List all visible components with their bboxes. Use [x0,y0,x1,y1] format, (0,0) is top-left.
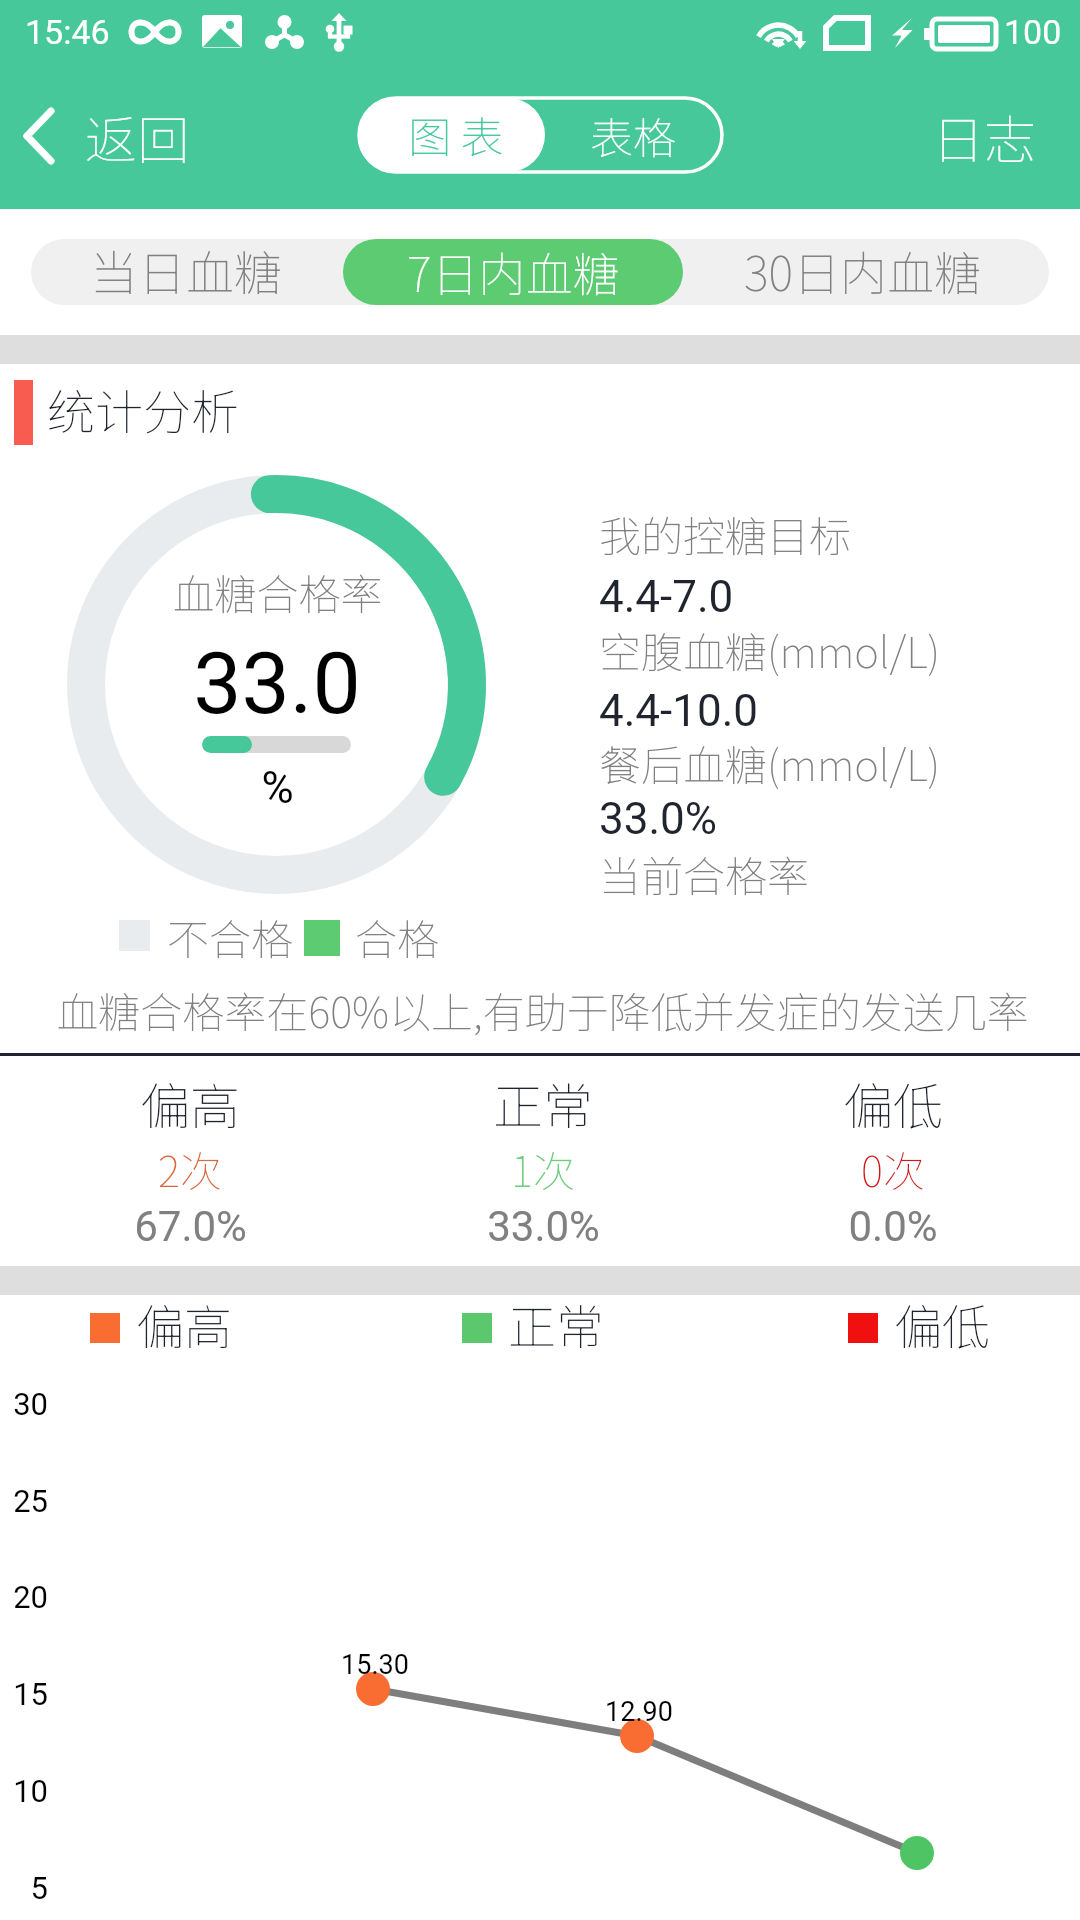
button[interactable] [720,1056,1060,1256]
staticText: 偏高 [140,1067,240,1139]
staticText: 0次 [861,1138,925,1199]
staticText: 4.4-7.0 [599,571,734,623]
staticText: 15 [0,1676,48,1712]
button[interactable]: 返回 [12,100,212,195]
button[interactable] [31,239,343,305]
button[interactable] [359,98,545,172]
button[interactable] [545,98,722,172]
staticText: 15:46 [25,12,110,52]
staticText: 当日血糖 [90,235,283,305]
staticText: 偏低 [843,1067,943,1139]
staticText: 67.0% [134,1202,247,1251]
staticText: 4.4-10.0 [599,685,759,737]
button[interactable] [10,1056,350,1256]
staticText: 当前合格率 [599,843,810,904]
staticText: % [261,762,294,814]
staticText: 统计分析 [47,374,240,444]
staticText: 图 表 [408,103,504,165]
staticText: 正常 [508,1289,605,1359]
staticText: 12.90 [605,1696,673,1728]
staticText: 日志 [932,99,1037,174]
staticText: 血糖合格率在60%以上,有助于降低并发症的发送几率 [56,979,1029,1040]
button[interactable] [683,239,1049,305]
staticText: 0.0% [848,1202,938,1251]
staticText: 偏低 [894,1289,991,1359]
staticText: 空腹血糖(mmol/L) [599,619,941,680]
button[interactable] [905,100,1075,195]
staticText: 5 [0,1870,48,1906]
staticText: 返回 [85,99,190,174]
staticText: 2次 [158,1138,222,1199]
staticText: 30日内血糖 [744,236,981,304]
staticText: 我的控糖目标 [599,503,852,564]
staticText: 15.30 [341,1649,409,1681]
button[interactable] [343,239,683,305]
staticText: 偏高 [136,1289,233,1359]
staticText: 正常 [493,1067,593,1139]
staticText: 血糖合格率 [172,561,383,622]
staticText: 1次 [511,1138,575,1199]
staticText: 33.0% [599,793,718,845]
staticText: 25 [0,1483,48,1519]
staticText: 表格 [590,104,676,166]
staticText: 餐后血糖(mmol/L) [599,732,941,793]
staticText: 20 [0,1579,48,1615]
staticText: 7日内血糖 [407,237,620,305]
staticText: 33.0% [487,1202,600,1251]
staticText: 10 [0,1773,48,1809]
staticText: 不合格 [167,906,294,967]
button[interactable] [370,1056,710,1256]
staticText: 100 [1004,12,1062,52]
staticText: 30 [0,1386,48,1422]
staticText: 合格 [355,906,440,967]
staticText: 33.0 [193,633,361,734]
